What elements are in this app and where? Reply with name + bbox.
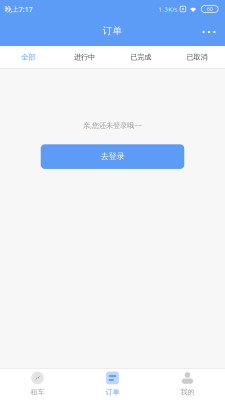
staticText: 订单 xyxy=(102,25,122,37)
staticText: 60 xyxy=(207,5,213,12)
button[interactable]: 我的 xyxy=(150,369,225,400)
staticText: 租车 xyxy=(30,387,44,397)
button[interactable]: 租车 xyxy=(0,369,75,400)
button[interactable]: 全部 xyxy=(0,46,56,68)
staticText: 已取消 xyxy=(186,53,207,62)
staticText: 全部 xyxy=(21,53,35,62)
button[interactable]: More options xyxy=(195,18,223,46)
staticText: 我的 xyxy=(180,387,194,397)
button[interactable]: 进行中 xyxy=(56,46,112,68)
button[interactable]: 已取消 xyxy=(169,46,225,68)
button[interactable]: 订单 xyxy=(75,369,150,400)
staticText: 亲,您还未登录哦~~ xyxy=(83,120,142,130)
button[interactable]: 已完成 xyxy=(112,46,169,68)
button[interactable]: 去登录 xyxy=(41,144,184,169)
staticText: 晚上7:17 xyxy=(4,4,32,14)
staticText: 已完成 xyxy=(130,53,151,62)
staticText: 进行中 xyxy=(74,53,95,62)
staticText: 去登录 xyxy=(100,151,124,161)
staticText: 订单 xyxy=(105,387,119,397)
staticText: 1.3K/s xyxy=(158,5,177,13)
